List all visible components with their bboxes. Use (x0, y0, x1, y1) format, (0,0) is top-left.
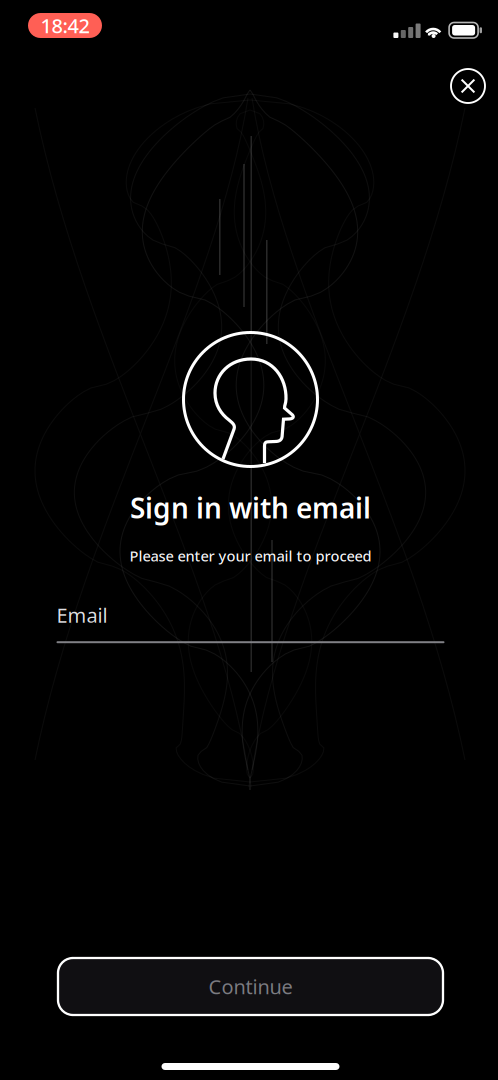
button[interactable]: Continue (58, 958, 443, 1015)
button[interactable]: Close (446, 64, 490, 108)
button[interactable]: Email (56, 602, 444, 643)
staticText: Continue (208, 973, 292, 1000)
staticText: 18:42 (40, 12, 89, 39)
staticText: Sign in with email (130, 489, 371, 526)
staticText: Please enter your email to proceed (129, 546, 371, 566)
staticText: Email (56, 602, 107, 628)
